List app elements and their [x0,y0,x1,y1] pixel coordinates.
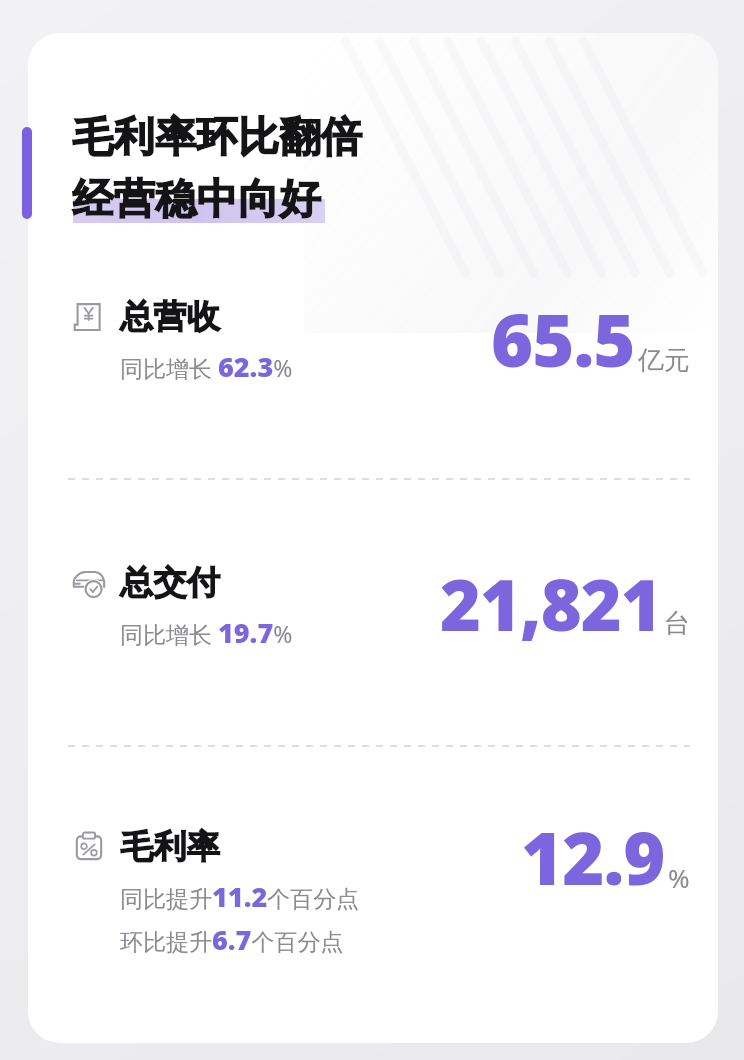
staticText: % [668,860,690,895]
button[interactable]: Gross margin [70,826,490,964]
staticText: 环比提升6.7个百分点 [120,921,344,958]
staticText: 21,821 [440,556,661,651]
staticText: 同比增长 19.7% [120,614,293,651]
staticText: 经营稳中向好 [72,174,321,226]
staticText: 同比增长 62.3% [120,348,293,385]
button[interactable]: 21,821 [0,556,690,651]
button[interactable]: 12.9 [0,808,690,906]
button[interactable]: Deliveries [70,562,490,657]
staticText: 12.9 [521,808,665,906]
other: Revenue [70,298,108,336]
button[interactable]: 65.5 [0,290,690,388]
button[interactable]: Revenue [70,296,490,391]
staticText: 65.5 [491,290,635,388]
other: Deliveries [70,564,108,602]
staticText: 毛利率 [120,826,221,868]
staticText: 总交付 [120,562,221,604]
staticText: 总营收 [120,296,221,338]
staticText: 同比提升11.2个百分点 [120,878,360,915]
staticText: 台 [664,607,690,640]
other: Gross margin [70,828,108,866]
staticText: 毛利率环比翻倍 [72,112,363,164]
staticText: 亿元 [638,344,690,377]
